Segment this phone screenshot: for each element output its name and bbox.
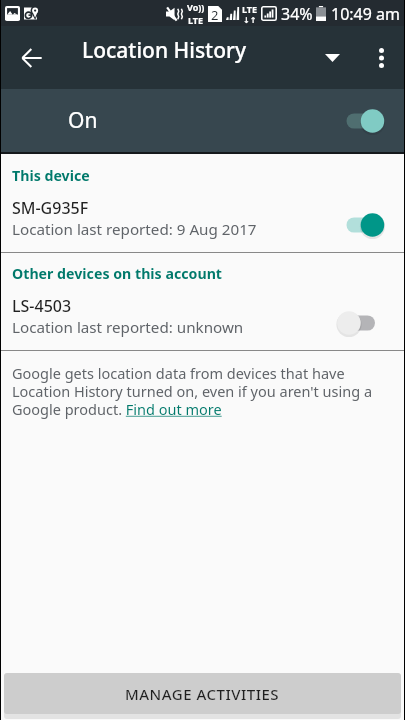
button[interactable]: Navigate up (4, 30, 60, 86)
button[interactable]: On (1, 89, 404, 152)
button[interactable]: Show dropdown (308, 30, 356, 86)
staticText: Location last reported: 9 Aug 2017 (12, 219, 257, 240)
staticText: 34% (281, 3, 313, 25)
staticText: Location History (82, 36, 246, 65)
staticText: LTE (242, 3, 258, 15)
staticText: Other devices on this account (12, 264, 223, 283)
staticText: Vo)) (187, 1, 205, 13)
staticText: LTE (188, 14, 204, 26)
staticText: Location last reported: unknown (12, 317, 244, 338)
button[interactable]: Google gets location data from devices t… (12, 363, 388, 419)
button[interactable]: More options (358, 30, 404, 86)
staticText: 2 (211, 6, 219, 22)
staticText: 10:49 am (331, 3, 400, 25)
staticText: Google gets location data from devices t… (12, 363, 388, 419)
staticText: MANAGE ACTIVITIES (125, 684, 280, 704)
button[interactable]: MANAGE ACTIVITIES (4, 673, 401, 714)
button[interactable]: SM-G935F (1, 185, 404, 252)
staticText: This device (12, 166, 90, 185)
staticText: LS-4503 (12, 295, 72, 317)
button[interactable]: LS-4503 (1, 283, 404, 350)
staticText: SM-G935F (12, 197, 89, 219)
staticText: ↓↑ (243, 16, 257, 25)
staticText: On (68, 106, 98, 135)
